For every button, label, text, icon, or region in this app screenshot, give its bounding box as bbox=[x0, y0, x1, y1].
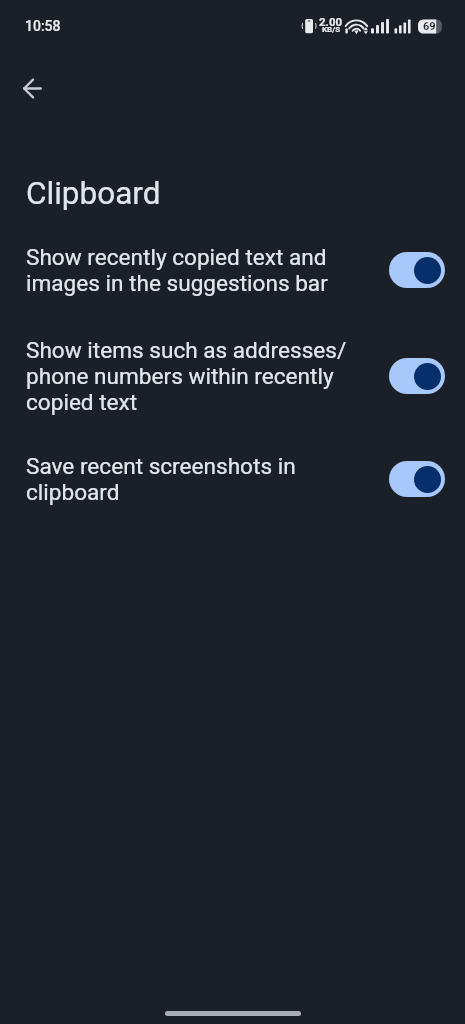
button[interactable]: Back bbox=[12, 68, 52, 108]
button[interactable]: Toggle bbox=[389, 358, 445, 394]
staticText: Show recently copied text and images in … bbox=[26, 244, 382, 296]
staticText: KB/S bbox=[322, 25, 341, 34]
button[interactable]: Toggle bbox=[389, 461, 445, 497]
button[interactable]: Show recently copied text and images in … bbox=[0, 225, 465, 315]
staticText: Show items such as addresses/phone numbe… bbox=[26, 337, 382, 415]
button[interactable]: Show items such as addresses/phone numbe… bbox=[0, 318, 465, 434]
button[interactable]: Save recent screenshots in clipboard bbox=[0, 434, 465, 524]
staticText: 69 bbox=[423, 20, 436, 33]
button[interactable]: Toggle bbox=[389, 252, 445, 288]
staticText: Clipboard bbox=[26, 175, 161, 212]
staticText: 10:58 bbox=[25, 18, 61, 34]
staticText: 2.00 bbox=[319, 15, 343, 28]
staticText: Save recent screenshots in clipboard bbox=[26, 453, 382, 505]
